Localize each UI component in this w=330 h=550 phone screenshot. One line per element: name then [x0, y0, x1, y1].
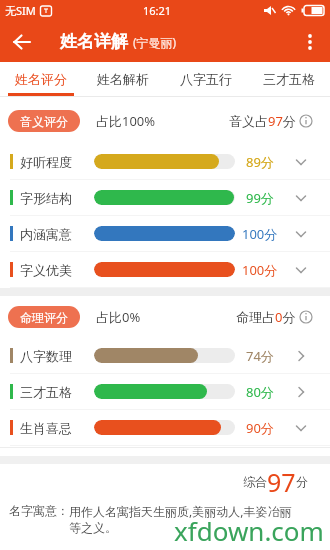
staticText: 89分	[246, 153, 274, 171]
staticText: 三才五格	[20, 384, 94, 400]
staticText: 姓名评分	[15, 71, 67, 87]
button[interactable]: 音义评分	[8, 110, 80, 132]
staticText: 80分	[246, 383, 274, 401]
button[interactable]: 三才五格	[0, 374, 330, 409]
staticText: 姓名解析	[97, 71, 149, 87]
button[interactable]: 命理评分	[8, 306, 80, 328]
staticText: 字义优美	[20, 262, 94, 278]
button[interactable]: 三才五格	[247, 62, 330, 96]
staticText: 命理评分	[20, 310, 68, 325]
staticText: (宁曼丽)	[133, 34, 177, 50]
staticText: 名字寓意：	[9, 503, 69, 518]
button[interactable]	[0, 21, 44, 62]
button[interactable]: 姓名评分	[0, 62, 82, 96]
staticText: 97	[267, 465, 296, 499]
staticText: 占比100%	[96, 112, 156, 130]
staticText: 分	[296, 474, 308, 489]
button[interactable]: 内涵寓意	[0, 216, 330, 251]
staticText: 用作人名寓指天生丽质,美丽动人,丰姿冶丽 等之义。	[69, 503, 292, 536]
staticText: 好听程度	[20, 154, 94, 170]
staticText: 16:21	[143, 3, 172, 18]
staticText: 姓名详解	[60, 31, 128, 52]
button[interactable]: 生肖喜忌	[0, 410, 330, 445]
button[interactable]: 好听程度	[0, 144, 330, 179]
staticText: xfdown.com	[174, 513, 324, 548]
staticText: 100分	[242, 225, 278, 243]
button[interactable]: 字义优美	[0, 252, 330, 287]
staticText: 八字五行	[180, 71, 232, 87]
staticText: 三才五格	[263, 71, 315, 87]
staticText: 100分	[242, 261, 278, 279]
button[interactable]	[290, 21, 330, 62]
staticText: 90分	[246, 419, 274, 437]
button[interactable]: 八字数理	[0, 338, 330, 373]
staticText: 八字数理	[20, 348, 94, 364]
staticText: 音义占97分	[229, 112, 296, 130]
staticText: 74分	[246, 347, 274, 365]
staticText: 生肖喜忌	[20, 420, 94, 436]
staticText: 字形结构	[20, 190, 94, 206]
staticText: 占比0%	[96, 308, 141, 326]
button[interactable]: 姓名解析	[82, 62, 164, 96]
staticText: 命理占0分	[236, 308, 296, 326]
staticText: 综合	[243, 474, 267, 489]
button[interactable]: 八字五行	[164, 62, 247, 96]
button[interactable]: 字形结构	[0, 180, 330, 215]
staticText: 内涵寓意	[20, 226, 94, 242]
staticText: 无SIM	[5, 3, 36, 18]
staticText: 音义评分	[20, 114, 68, 129]
staticText: 99分	[246, 189, 274, 207]
